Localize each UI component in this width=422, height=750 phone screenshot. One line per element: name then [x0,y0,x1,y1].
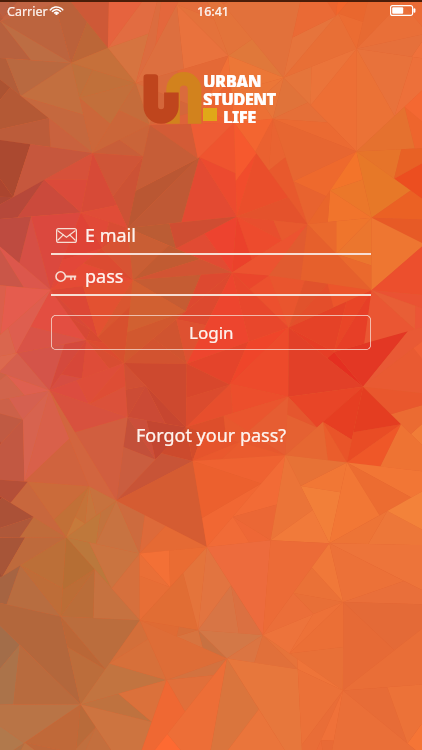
staticText: STUDENT [203,87,277,105]
staticText: Forgot your pass? [136,423,287,448]
button[interactable]: pass [51,263,371,297]
button[interactable]: Login [51,315,371,350]
staticText: 16:41 [197,3,230,20]
staticText: URBAN [203,69,262,87]
staticText: E mail [85,223,136,248]
staticText: Carrier [7,3,48,20]
staticText: LIFE [223,105,256,123]
staticText: Login [189,321,234,344]
staticText: pass [85,264,124,289]
button[interactable]: Forgot your pass? [126,418,297,453]
button[interactable]: E mail [51,222,371,256]
